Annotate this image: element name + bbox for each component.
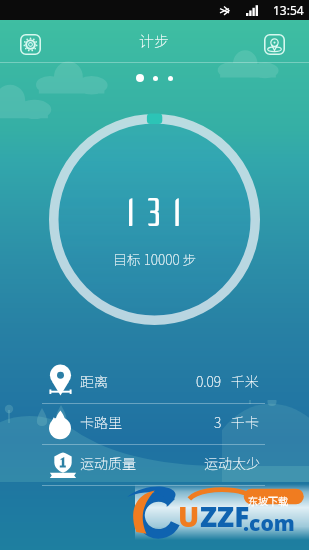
staticText: 千卡: [231, 412, 259, 432]
staticText: 千米: [231, 371, 259, 391]
staticText: .com: [243, 509, 295, 538]
staticText: 运动太少: [204, 453, 260, 473]
button[interactable]: 运动质量: [0, 445, 309, 485]
staticText: 运动质量: [80, 453, 136, 473]
button[interactable]: 距离: [0, 363, 309, 403]
staticText: 东坡下载: [248, 493, 288, 507]
button[interactable]: 卡路里: [0, 404, 309, 444]
button[interactable]: Settings: [13, 27, 47, 61]
staticText: ZZF: [200, 497, 250, 535]
staticText: U: [178, 497, 200, 535]
staticText: 计步: [139, 30, 170, 52]
staticText: 卡路里: [80, 412, 122, 432]
staticText: 距离: [80, 371, 108, 391]
staticText: 目标 10000 步: [113, 249, 197, 269]
button[interactable]: Location: [257, 27, 291, 61]
staticText: 13:54: [273, 2, 304, 18]
staticText: 3: [214, 412, 222, 432]
staticText: 131: [126, 191, 193, 236]
staticText: 0.09: [196, 371, 222, 391]
